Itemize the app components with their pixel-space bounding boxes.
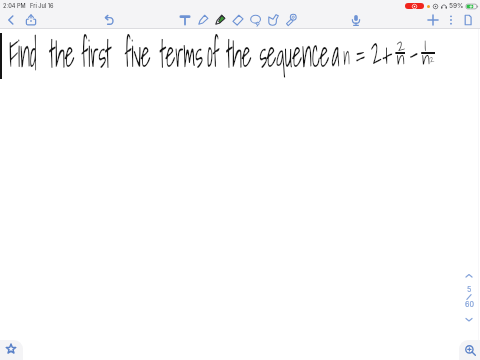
button[interactable]: Previous page (461, 267, 477, 283)
button[interactable]: Hand (265, 12, 281, 28)
staticText: 1 (424, 32, 425, 58)
staticText: 2:04 PM (3, 3, 26, 10)
staticText: – (410, 24, 418, 79)
staticText: 2 (371, 22, 382, 80)
staticText: the (50, 25, 74, 83)
button[interactable]: Highlighter (212, 12, 228, 28)
staticText: 59% (449, 2, 464, 10)
button[interactable]: Zoom in (459, 340, 480, 360)
button[interactable]: Pages (460, 12, 476, 28)
staticText: n (397, 46, 404, 72)
button[interactable]: Text tool (177, 12, 193, 28)
button[interactable]: Back (3, 12, 19, 28)
staticText: 5 (467, 285, 472, 293)
staticText: a (332, 25, 340, 83)
staticText: + (382, 26, 392, 84)
staticText: Fri Jul 16 (30, 3, 54, 10)
staticText: 2 (397, 32, 405, 58)
staticText: sequence (259, 25, 329, 83)
button[interactable]: Microphone (348, 12, 364, 28)
button[interactable]: Share (23, 12, 39, 28)
button[interactable]: Pen (195, 12, 211, 28)
staticText: terms (160, 25, 203, 83)
button[interactable]: More options (443, 12, 459, 28)
staticText: n² (422, 46, 435, 72)
button[interactable]: Lasso (248, 12, 264, 28)
button[interactable]: Eraser (230, 12, 246, 28)
staticText: n (343, 38, 350, 75)
button[interactable]: Next page (461, 311, 477, 327)
staticText: Find (9, 25, 37, 83)
staticText: first (81, 25, 112, 83)
button[interactable]: Bookmark (0, 340, 23, 360)
staticText: five (124, 25, 151, 83)
button[interactable]: Add (425, 12, 441, 28)
staticText: 60 (465, 300, 474, 308)
staticText: the (227, 25, 251, 83)
button[interactable]: Shape tool (283, 12, 299, 28)
staticText: = (356, 23, 365, 81)
staticText: of (207, 25, 220, 83)
button[interactable]: Undo (101, 12, 117, 28)
